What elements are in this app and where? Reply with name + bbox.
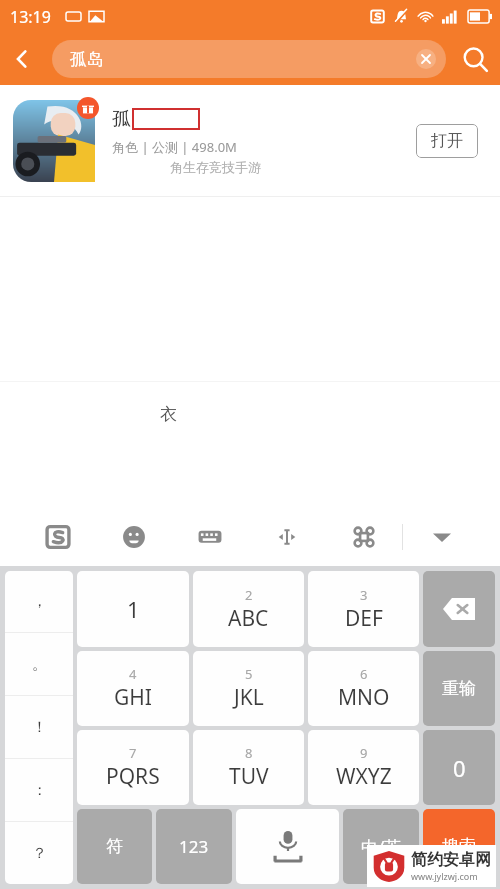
staticText: 重输 (442, 678, 476, 699)
staticText: 简约安卓网 (411, 850, 491, 870)
staticText: PQRS (106, 762, 160, 791)
staticText: 衣 (160, 404, 177, 425)
button[interactable]: 1 (77, 571, 189, 647)
button[interactable]: 7 (77, 730, 189, 805)
staticText: 1 (127, 594, 140, 624)
staticText: 符 (106, 836, 123, 857)
staticText: 8 (245, 744, 253, 762)
staticText: 5 (245, 665, 253, 683)
staticText: 4 (129, 665, 137, 683)
button[interactable]: 8 (193, 730, 304, 805)
button[interactable]: Space, voice input (236, 809, 339, 884)
staticText: 角色 | 公测 | 498.0M (112, 138, 237, 156)
button[interactable]: Hide keyboard (403, 508, 480, 566)
button[interactable]: 。 (5, 633, 73, 695)
staticText: 123 (179, 835, 209, 858)
staticText: ！ (32, 718, 47, 737)
button[interactable]: 孤岛 (52, 40, 446, 78)
button[interactable]: Sogou input (20, 508, 96, 566)
button[interactable]: ： (5, 759, 73, 821)
button[interactable]: 中/英 (343, 809, 419, 884)
staticText: 2 (245, 586, 253, 604)
button[interactable]: Search (450, 34, 500, 84)
button[interactable]: Clear (416, 49, 436, 69)
button[interactable]: Emoji (96, 508, 172, 566)
button[interactable]: 0 (423, 730, 495, 805)
button[interactable]: 123 (156, 809, 232, 884)
staticText: ， (32, 592, 47, 611)
button[interactable]: Keyboard layout (172, 508, 248, 566)
button[interactable]: 重输 (423, 651, 495, 726)
staticText: 6 (360, 665, 368, 683)
staticText: 孤 (112, 107, 131, 131)
staticText: 搜索 (442, 836, 476, 857)
staticText: ABC (228, 604, 269, 633)
staticText: DEF (345, 604, 383, 633)
button[interactable]: Delete (423, 571, 495, 647)
staticText: 3 (360, 586, 368, 604)
button[interactable]: 孤 (0, 85, 500, 196)
button[interactable]: 9 (308, 730, 419, 805)
button[interactable]: ？ (5, 822, 73, 884)
button[interactable]: ！ (5, 696, 73, 758)
staticText: 13:19 (10, 6, 51, 28)
button[interactable]: 符 (77, 809, 152, 884)
button[interactable]: Move cursor (248, 508, 325, 566)
button[interactable]: Shortcuts (325, 508, 402, 566)
button[interactable]: 打开 (416, 124, 478, 158)
staticText: 角生存竞技手游 (170, 159, 261, 175)
button[interactable]: 2 (193, 571, 304, 647)
staticText: ： (32, 781, 47, 800)
button[interactable]: 6 (308, 651, 419, 726)
button[interactable]: 搜索 (423, 809, 495, 884)
button[interactable]: Back (0, 37, 44, 81)
staticText: 打开 (431, 131, 463, 151)
staticText: 7 (129, 744, 137, 762)
staticText: ？ (32, 844, 47, 863)
staticText: 9 (360, 744, 368, 762)
button[interactable]: ， (5, 571, 73, 632)
staticText: 0 (453, 753, 466, 783)
staticText: www.jylzwj.com (411, 870, 478, 882)
button[interactable]: 4 (77, 651, 189, 726)
staticText: 中/英 (361, 835, 402, 858)
staticText: 孤岛 (70, 49, 104, 70)
staticText: WXYZ (336, 762, 392, 791)
staticText: 。 (32, 655, 47, 674)
button[interactable]: 3 (308, 571, 419, 647)
staticText: JKL (234, 683, 264, 712)
staticText: MNO (338, 683, 390, 712)
staticText: GHI (114, 683, 152, 712)
staticText: TUV (229, 762, 269, 791)
button[interactable]: 5 (193, 651, 304, 726)
